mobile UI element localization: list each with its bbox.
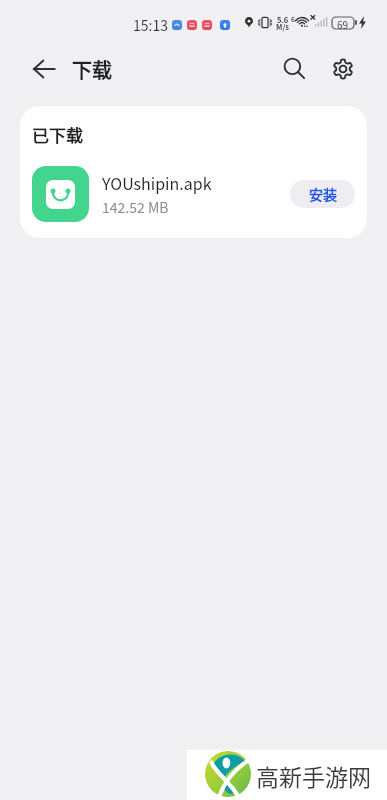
staticText: 69 <box>337 17 349 29</box>
staticText: 高新手游网 <box>256 759 371 792</box>
button[interactable]: Settings <box>323 49 363 89</box>
staticText: YOUshipin.apk <box>102 171 212 194</box>
button[interactable]: 安装 <box>290 180 355 208</box>
button[interactable]: YOUshipin.apk <box>20 156 367 232</box>
button[interactable]: Search <box>274 48 314 88</box>
staticText: 15:13 <box>133 15 168 35</box>
staticText: 6 <box>291 14 295 23</box>
staticText: 安装 <box>309 184 337 204</box>
staticText: 下载 <box>72 55 112 84</box>
staticText: M/s <box>276 21 290 32</box>
staticText: 已下载 <box>32 122 83 147</box>
staticText: 142.52 MB <box>102 197 169 217</box>
button[interactable]: Back <box>26 51 62 87</box>
staticText: 5.6 <box>277 14 289 25</box>
